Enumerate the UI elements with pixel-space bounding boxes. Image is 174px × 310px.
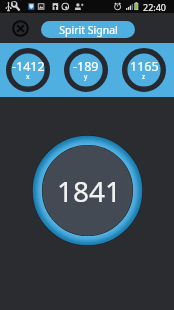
staticText: -189 [73,58,99,75]
button[interactable]: -189 [64,48,108,92]
button[interactable]: 1165 [122,48,166,92]
staticText: 1841 [57,172,122,210]
staticText: z [142,72,146,81]
staticText: y [84,72,88,81]
staticText: -1412 [12,58,45,75]
staticText: 1165 [130,58,159,75]
button[interactable]: Close [10,18,31,39]
staticText: x [26,72,30,81]
staticText: 22:40 [143,1,167,13]
button[interactable]: -1412 [6,48,50,92]
button[interactable]: 1841 [32,135,143,246]
button[interactable]: Spirit Signal [41,21,135,38]
staticText: Spirit Signal [59,23,118,37]
